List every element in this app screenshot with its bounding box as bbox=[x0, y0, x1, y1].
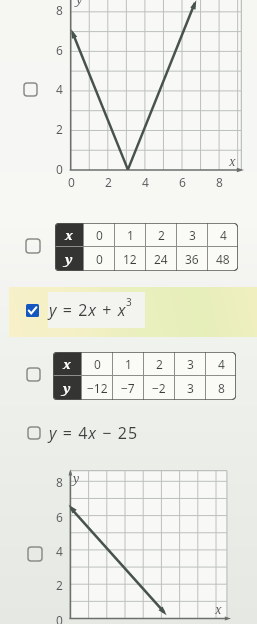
staticText: 1 bbox=[125, 356, 132, 372]
staticText: 6 bbox=[179, 174, 186, 190]
staticText: 2 bbox=[105, 174, 112, 190]
staticText: 8 bbox=[216, 174, 223, 190]
staticText: y = 2x + x bbox=[49, 299, 127, 321]
button[interactable]: Selected answer bbox=[20, 290, 160, 330]
staticText: 3 bbox=[187, 356, 194, 372]
staticText: −7 bbox=[121, 380, 135, 396]
staticText: y bbox=[65, 250, 73, 268]
button[interactable]: Select answer bbox=[27, 368, 40, 381]
button[interactable]: Select answer bbox=[24, 83, 37, 96]
staticText: −2 bbox=[152, 380, 166, 396]
staticText: 48 bbox=[216, 251, 230, 267]
staticText: 4 bbox=[218, 356, 225, 372]
staticText: 3 bbox=[189, 227, 196, 243]
staticText: 4 bbox=[142, 174, 149, 190]
staticText: 4 bbox=[56, 543, 63, 559]
staticText: y bbox=[73, 470, 80, 486]
staticText: 2 bbox=[158, 227, 165, 243]
staticText: 3 bbox=[126, 295, 132, 309]
button[interactable]: Selected answer bbox=[26, 304, 39, 317]
button[interactable]: Select answer bbox=[28, 427, 40, 439]
staticText: 6 bbox=[56, 509, 63, 525]
staticText: 0 bbox=[56, 612, 63, 624]
staticText: 1 bbox=[127, 227, 134, 243]
button[interactable]: Select answer bbox=[22, 414, 152, 452]
staticText: 2 bbox=[156, 356, 163, 372]
staticText: 0 bbox=[56, 161, 63, 177]
staticText: 36 bbox=[185, 251, 199, 267]
staticText: 6 bbox=[56, 42, 63, 58]
staticText: 0 bbox=[94, 356, 101, 372]
staticText: −12 bbox=[87, 380, 108, 396]
staticText: 3 bbox=[187, 380, 194, 396]
button[interactable]: x bbox=[55, 223, 238, 271]
button[interactable]: Select answer bbox=[28, 547, 42, 561]
staticText: 2 bbox=[56, 577, 63, 593]
staticText: 24 bbox=[154, 251, 168, 267]
staticText: 0 bbox=[96, 251, 103, 267]
staticText: 8 bbox=[56, 2, 63, 18]
staticText: y bbox=[63, 379, 71, 397]
button[interactable]: x bbox=[53, 352, 236, 400]
button[interactable]: Select answer bbox=[26, 239, 40, 253]
staticText: 2 bbox=[56, 121, 63, 137]
staticText: x bbox=[63, 355, 71, 373]
staticText: y = 4x − 25 bbox=[49, 422, 139, 444]
staticText: 8 bbox=[56, 474, 63, 490]
staticText: 4 bbox=[220, 227, 227, 243]
staticText: 0 bbox=[96, 227, 103, 243]
staticText: x bbox=[215, 601, 222, 617]
staticText: x bbox=[65, 226, 73, 244]
staticText: x bbox=[229, 153, 236, 169]
staticText: y bbox=[76, 0, 83, 7]
staticText: 0 bbox=[68, 174, 75, 190]
staticText: 8 bbox=[218, 380, 225, 396]
staticText: 12 bbox=[123, 251, 137, 267]
staticText: 4 bbox=[56, 81, 63, 97]
